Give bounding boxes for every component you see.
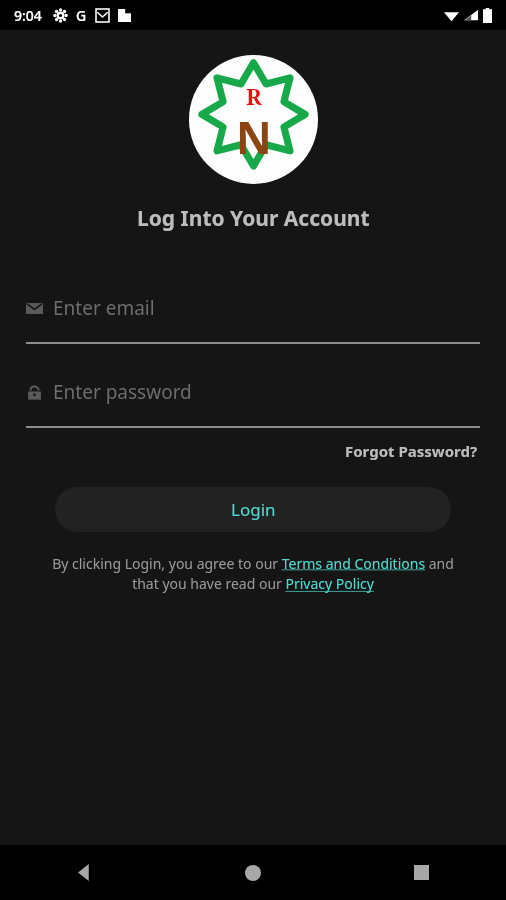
button[interactable]: Back [0,845,168,900]
staticText: G [76,6,87,25]
staticText: Enter password [53,379,192,405]
button[interactable]: By clicking Login, you agree to our Term… [40,554,466,594]
staticText: 9:04 [14,6,42,25]
button[interactable]: Recent apps [337,845,506,900]
staticText: R [246,81,262,111]
button[interactable]: Forgot Password? [343,438,480,464]
staticText: Login [231,498,276,521]
button[interactable]: Home [168,845,337,900]
button[interactable]: Email [26,291,480,325]
staticText: Enter email [53,295,155,321]
button[interactable]: Password [26,375,480,409]
button[interactable]: Login [55,487,451,532]
staticText: Forgot Password? [345,441,478,461]
other: Password [26,384,43,401]
other: Email [26,300,43,317]
button[interactable]: Logo [189,55,318,184]
staticText: N [236,107,272,167]
staticText: Log Into Your Account [137,204,370,233]
